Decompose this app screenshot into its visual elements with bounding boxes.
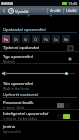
staticText: Opakování upozornění <box>3 27 46 32</box>
staticText: So <box>54 37 58 41</box>
button[interactable]: Inteligentní upozornění <box>0 111 79 121</box>
button[interactable]: So <box>52 35 60 43</box>
staticText: Uložit <box>66 8 77 13</box>
staticText: Ne <box>64 37 69 41</box>
staticText: 13:46 <box>68 1 78 6</box>
staticText: Upřesnit nastavení <box>3 92 39 97</box>
staticText: Tón upozornění <box>3 81 34 87</box>
staticText: 5 minut, 3krát <box>3 106 24 110</box>
staticText: St <box>24 37 28 41</box>
staticText: Posunout budík <box>3 100 34 106</box>
button[interactable]: Switch off <box>57 103 70 108</box>
staticText: 3 minuty, Cvrkot ptáků <box>3 117 37 121</box>
button[interactable]: Po <box>2 35 10 43</box>
staticText: Melodie <box>3 60 16 64</box>
button[interactable]: Ne <box>62 35 70 43</box>
staticText: Walk in the forest <box>3 87 30 91</box>
button[interactable]: Switch on <box>57 114 70 119</box>
staticText: Út <box>14 37 18 41</box>
button[interactable]: Čt <box>32 35 40 43</box>
staticText: Vyvolit upozornění <box>15 8 47 14</box>
button[interactable]: Út <box>12 35 20 43</box>
staticText: Po <box>4 37 8 41</box>
staticText: Upozornění <box>3 130 21 134</box>
button[interactable]: Weekly repeat <box>68 46 73 51</box>
button[interactable]: St <box>22 35 30 43</box>
button[interactable]: Tón upozornění <box>0 81 79 91</box>
button[interactable]: Zrušit <box>48 6 63 15</box>
button[interactable]: Typ upozornění <box>0 53 79 64</box>
staticText: Čt <box>34 37 38 41</box>
staticText: Inteligentní upozornění <box>3 111 49 117</box>
staticText: Jméno <box>3 124 16 130</box>
button[interactable]: Posunout budík <box>0 100 79 110</box>
button[interactable]: Uložit <box>64 6 79 15</box>
staticText: Pá <box>44 37 48 41</box>
staticText: Týdenní opakování <box>3 45 40 51</box>
staticText: Typ upozornění <box>3 54 33 60</box>
button[interactable]: Pá <box>42 35 50 43</box>
staticText: Zrušit <box>50 8 61 13</box>
button[interactable]: Preview sound <box>68 57 72 61</box>
button[interactable]: Jméno <box>0 124 79 134</box>
button[interactable]: Back <box>0 6 7 15</box>
button[interactable]: Týdenní opakování <box>0 44 79 52</box>
